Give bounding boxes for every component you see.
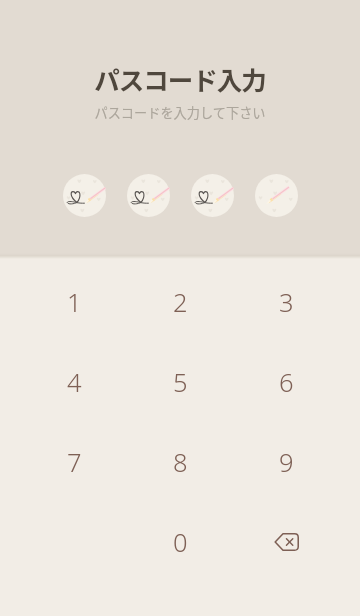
button[interactable]: 7 <box>21 422 127 502</box>
button[interactable]: 2 <box>127 262 233 342</box>
staticText: パスコードを入力して下さい <box>94 103 266 122</box>
button[interactable]: 4 <box>21 342 127 422</box>
button[interactable]: 1 <box>21 262 127 342</box>
button[interactable]: 6 <box>233 342 339 422</box>
button[interactable]: 5 <box>127 342 233 422</box>
button[interactable]: 0 <box>127 502 233 582</box>
button[interactable]: 8 <box>127 422 233 502</box>
staticText: 8 <box>173 445 188 480</box>
button[interactable]: Backspace <box>233 502 339 582</box>
staticText: 4 <box>67 365 82 400</box>
button[interactable]: 3 <box>233 262 339 342</box>
staticText: 7 <box>67 445 82 480</box>
staticText: パスコード入力 <box>94 60 266 97</box>
staticText: 1 <box>67 285 82 320</box>
staticText: 6 <box>279 365 294 400</box>
staticText: 5 <box>173 365 188 400</box>
staticText: 9 <box>279 445 294 480</box>
button[interactable]: 9 <box>233 422 339 502</box>
staticText: 2 <box>173 285 188 320</box>
staticText: 0 <box>173 525 188 560</box>
staticText: 3 <box>279 285 294 320</box>
